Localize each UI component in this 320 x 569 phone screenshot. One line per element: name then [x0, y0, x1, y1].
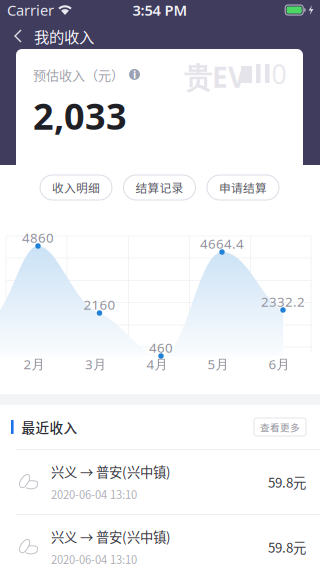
button[interactable]: 收入明细 — [40, 175, 112, 200]
staticText: 我的收入 — [34, 25, 94, 47]
staticText: 4664.4 — [200, 235, 244, 252]
staticText: 2月 — [23, 355, 44, 373]
staticText: i — [133, 67, 136, 82]
button[interactable]: 申请结算 — [207, 175, 279, 200]
staticText: 申请结算 — [219, 179, 267, 196]
button[interactable]: 兴义 → 普安(兴中镇) — [0, 515, 320, 569]
button[interactable]: 结算记录 — [123, 175, 195, 200]
staticText: 4月 — [146, 355, 167, 373]
staticText: 6月 — [268, 355, 289, 373]
staticText: 最近收入 — [22, 417, 78, 437]
staticText: 贵EV — [184, 58, 246, 96]
staticText: 收入明细 — [52, 179, 100, 196]
staticText: 兴义 → 普安(兴中镇) — [51, 527, 171, 546]
staticText: 2160 — [83, 296, 115, 313]
staticText: 3:54 PM — [132, 0, 187, 20]
button[interactable]: 返回 — [0, 20, 34, 52]
staticText: 59.8元 — [268, 472, 306, 492]
staticText: 460 — [149, 339, 173, 356]
staticText: 3月 — [85, 355, 106, 373]
staticText: 59.8元 — [268, 537, 306, 557]
button[interactable]: 兴义 → 普安(兴中镇) — [0, 450, 320, 514]
staticText: 2020-06-04 13:10 — [51, 551, 137, 567]
staticText: 2020-06-04 13:10 — [51, 486, 137, 502]
staticText: 4860 — [22, 229, 54, 246]
staticText: 兴义 → 普安(兴中镇) — [51, 462, 171, 481]
staticText: Carrier — [7, 0, 54, 20]
staticText: 2332.2 — [261, 293, 305, 310]
staticText: 结算记录 — [135, 179, 183, 196]
staticText: 0 — [271, 56, 286, 92]
staticText: 2,033 — [33, 92, 127, 140]
staticText: 查看更多 — [260, 420, 300, 434]
staticText: 5月 — [207, 355, 228, 373]
staticText: 预估收入（元） — [33, 65, 124, 84]
button[interactable]: 查看更多 — [254, 418, 306, 436]
